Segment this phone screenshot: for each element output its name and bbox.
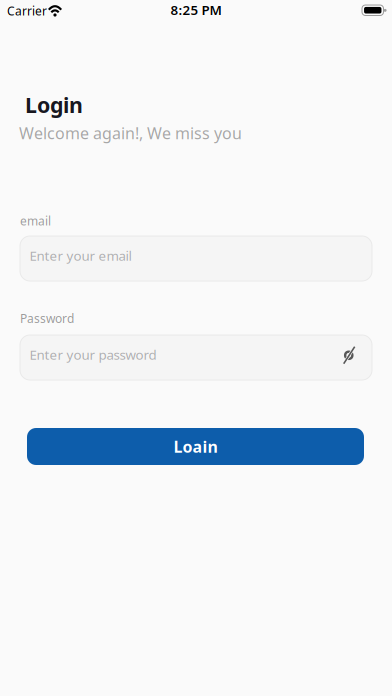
- staticText: Loain: [173, 436, 217, 457]
- staticText: Login: [25, 90, 83, 119]
- staticText: Password: [20, 310, 74, 326]
- staticText: email: [20, 213, 51, 229]
- button[interactable]: [339, 345, 359, 365]
- button[interactable]: Loain: [27, 428, 364, 465]
- button[interactable]: Enter your email: [20, 236, 372, 281]
- staticText: Carrier: [7, 3, 47, 19]
- staticText: Enter your email: [29, 247, 131, 264]
- staticText: Enter your password: [29, 346, 156, 363]
- staticText: Welcome again!, We miss you: [19, 122, 242, 144]
- button[interactable]: Enter your password: [20, 335, 372, 380]
- staticText: 8:25 PM: [170, 1, 221, 19]
